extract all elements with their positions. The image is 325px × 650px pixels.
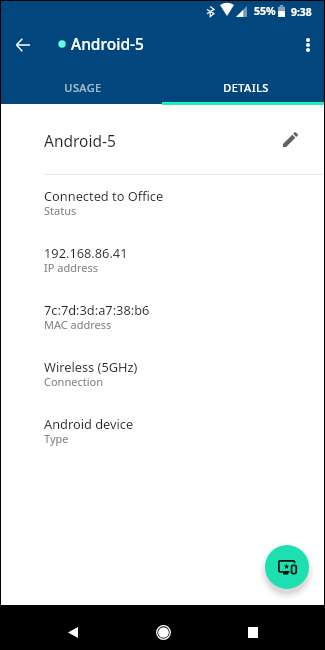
staticText: 9:38 <box>291 5 312 19</box>
staticText: Type <box>44 431 69 446</box>
staticText: 55% <box>254 4 276 18</box>
button[interactable]: Wireless (5GHz) <box>0 358 325 415</box>
staticText: IP address <box>44 260 99 275</box>
button[interactable]: Home <box>145 614 181 650</box>
button[interactable]: DETAILS <box>162 72 325 103</box>
staticText: USAGE <box>64 80 102 95</box>
staticText: Status <box>44 203 77 218</box>
staticText: Connected to Office <box>44 187 164 204</box>
button[interactable]: USAGE <box>0 72 162 103</box>
staticText: Wireless (5GHz) <box>44 358 138 375</box>
button[interactable]: More options <box>290 27 325 63</box>
staticText: Android-5 <box>71 33 144 54</box>
button[interactable]: 192.168.86.41 <box>0 244 325 301</box>
staticText: Connection <box>44 374 103 389</box>
button[interactable]: Back <box>55 614 91 650</box>
button[interactable]: Android device <box>0 415 325 472</box>
button[interactable]: Connected to Office <box>0 187 325 244</box>
staticText: DETAILS <box>223 80 269 95</box>
button[interactable]: Recents <box>235 614 271 650</box>
staticText: 7c:7d:3d:a7:38:b6 <box>44 301 150 318</box>
button[interactable]: Edit <box>266 115 314 163</box>
button[interactable]: Back <box>5 27 41 63</box>
staticText: 192.168.86.41 <box>44 244 128 261</box>
staticText: Android device <box>44 415 134 432</box>
staticText: Android-5 <box>44 130 116 151</box>
button[interactable]: Cast to device <box>265 545 309 589</box>
staticText: MAC address <box>44 317 112 332</box>
button[interactable]: 7c:7d:3d:a7:38:b6 <box>0 301 325 358</box>
